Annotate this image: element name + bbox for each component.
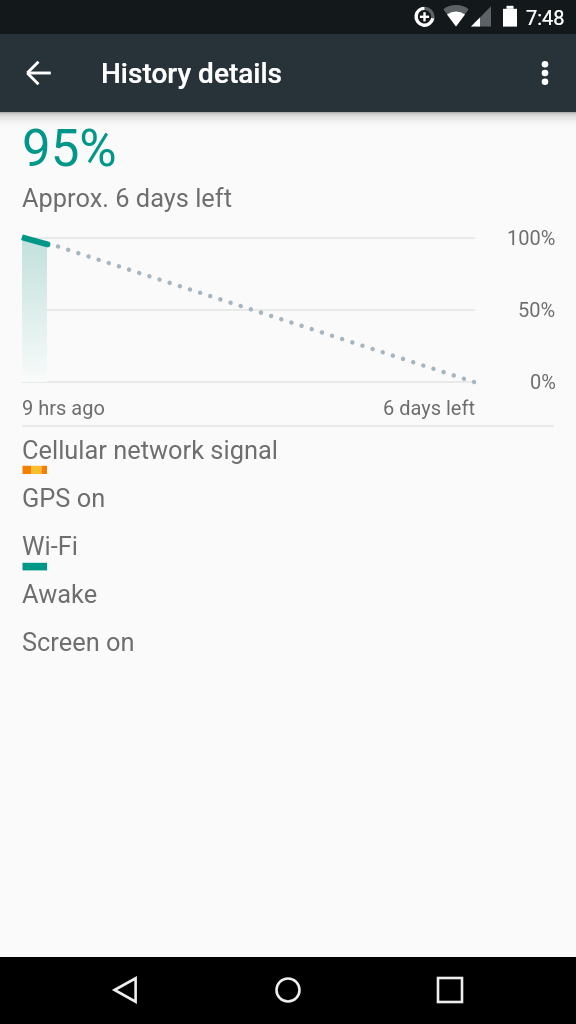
staticText: 9 hrs ago xyxy=(22,396,105,419)
button[interactable]: Cellular network signal xyxy=(0,434,576,468)
button[interactable]: Screen on xyxy=(0,626,576,660)
button[interactable]: Awake xyxy=(0,578,576,612)
staticText: Wi-Fi xyxy=(22,531,78,561)
staticText: 0% xyxy=(530,370,556,393)
button[interactable]: GPS on xyxy=(0,482,576,516)
staticText: Screen on xyxy=(22,627,135,657)
staticText: GPS on xyxy=(22,483,106,513)
staticText: History details xyxy=(101,57,282,90)
button[interactable]: Back xyxy=(98,962,154,1018)
staticText: 7:48 xyxy=(526,6,565,29)
staticText: 100% xyxy=(507,226,556,249)
staticText: 50% xyxy=(518,298,556,321)
button[interactable]: Back xyxy=(15,49,63,97)
button[interactable]: More options xyxy=(521,49,569,97)
button[interactable]: Home xyxy=(260,962,316,1018)
staticText: Cellular network signal xyxy=(22,435,278,465)
staticText: Approx. 6 days left xyxy=(22,183,232,213)
staticText: 95% xyxy=(22,119,117,179)
button[interactable]: Wi-Fi xyxy=(0,530,576,564)
staticText: 6 days left xyxy=(383,396,475,419)
staticText: Awake xyxy=(22,579,98,609)
button[interactable]: Recent apps xyxy=(422,962,478,1018)
